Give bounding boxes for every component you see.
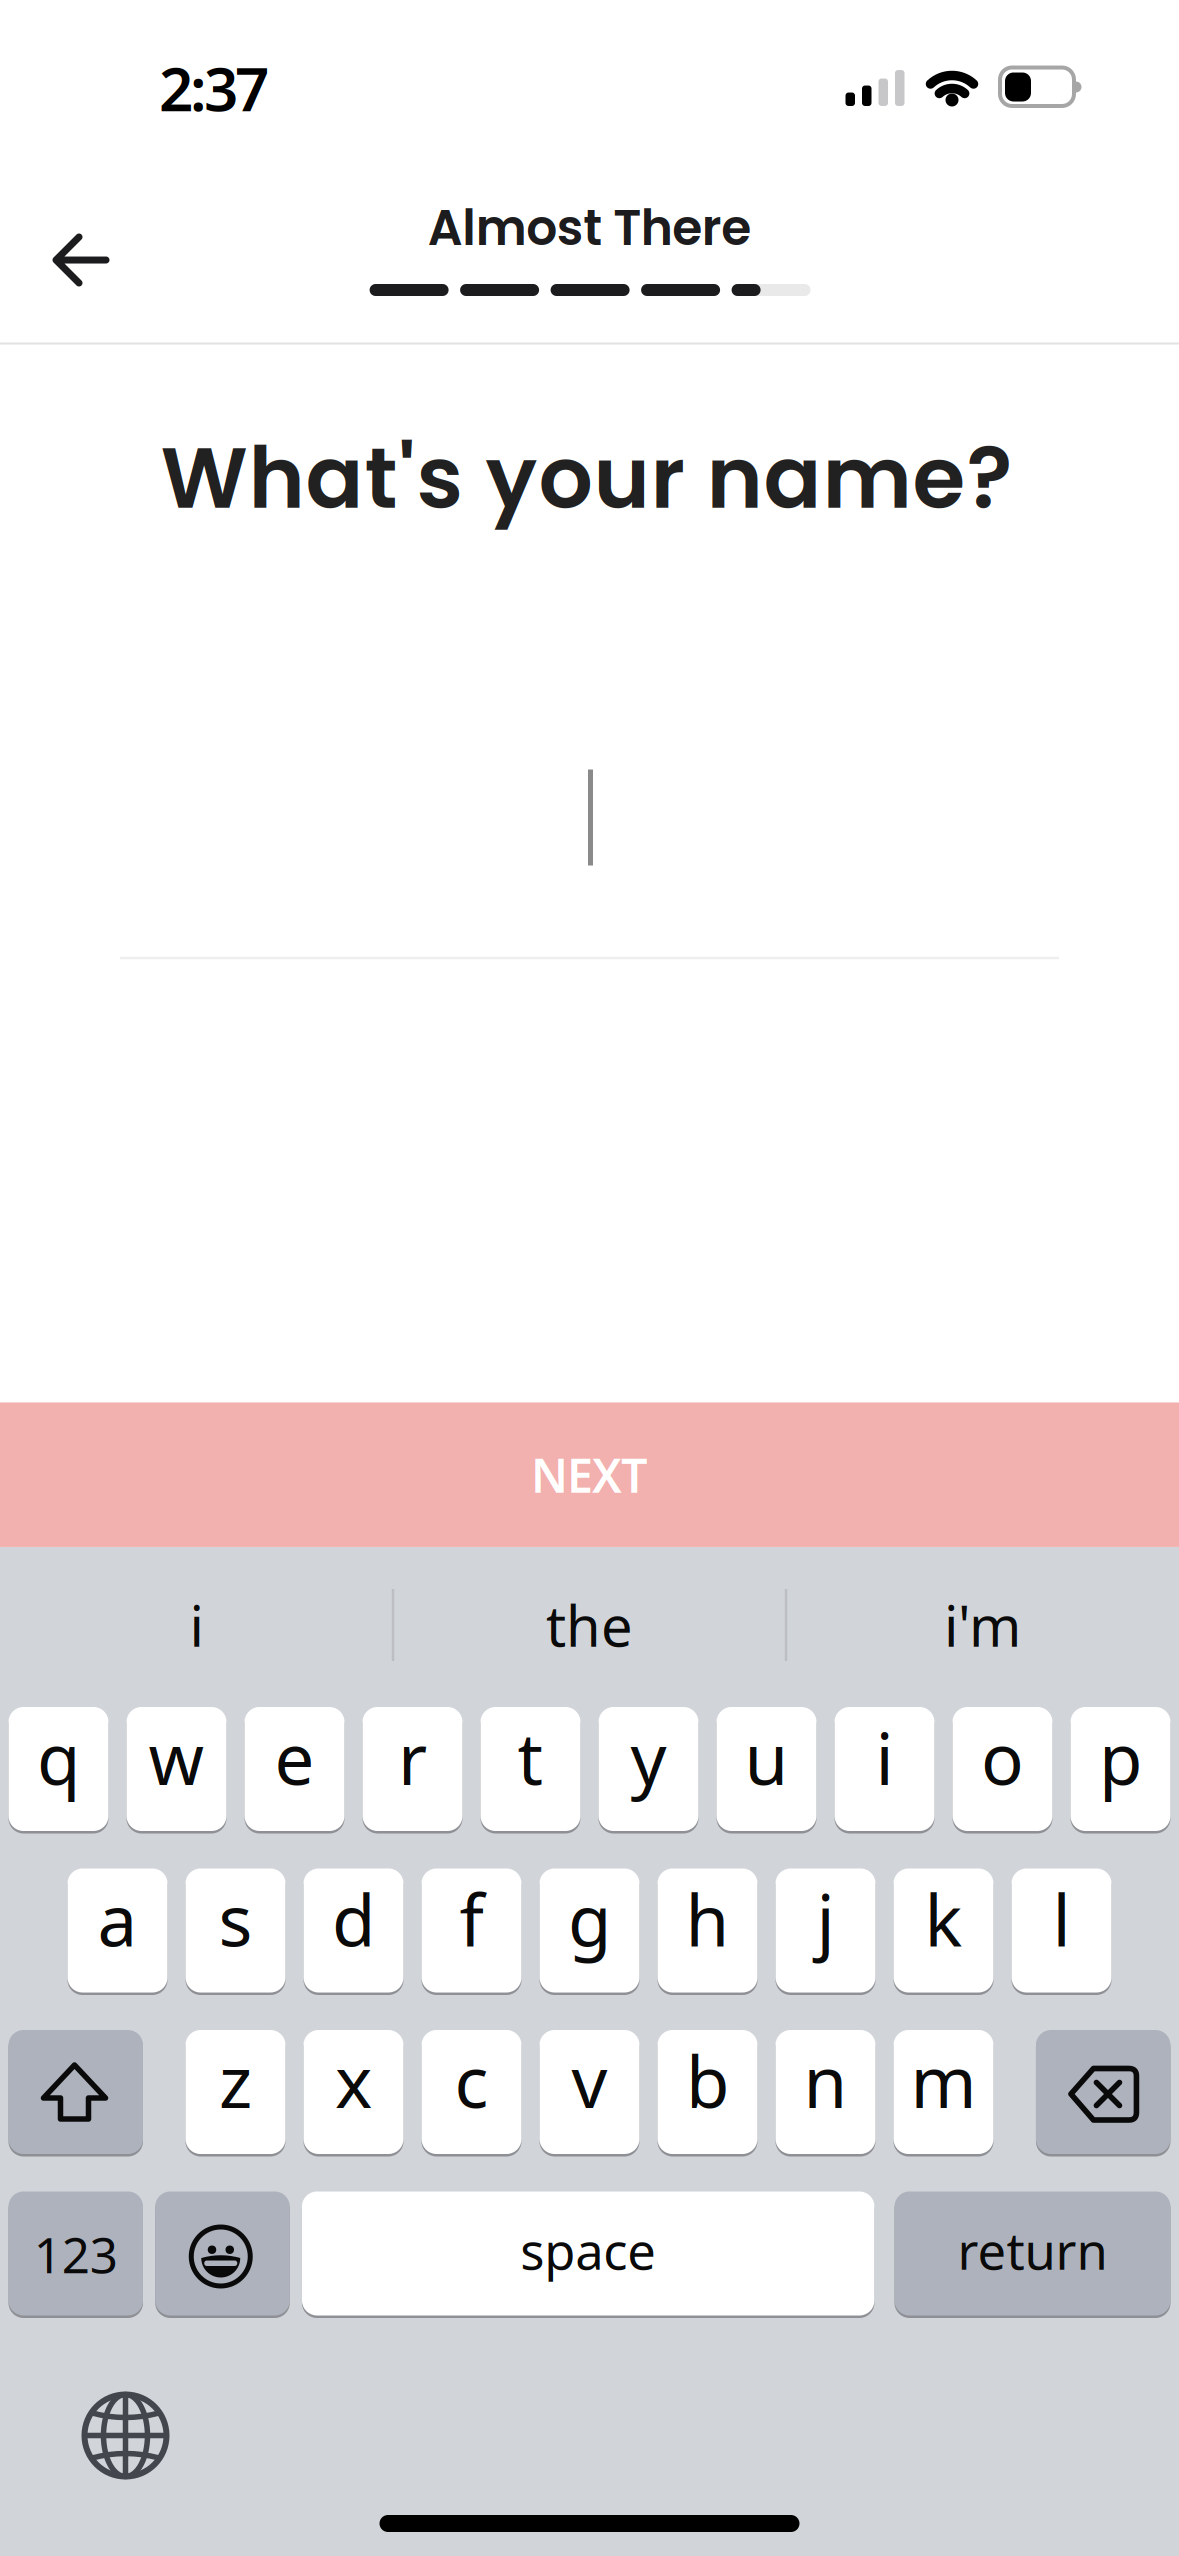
staticText: g [568,1872,611,1966]
staticText: i'm [944,1588,1021,1662]
button[interactable]: return [894,2190,1170,2317]
staticText: n [803,2034,847,2127]
staticText: space [520,2216,656,2284]
staticText: d [332,1872,375,1966]
button[interactable]: NEXT [0,1402,1179,1547]
button[interactable]: 123 [8,2190,143,2317]
staticText: l [1052,1872,1070,1966]
staticText: b [686,2034,729,2127]
staticText: w [148,1711,204,1804]
button[interactable]: r [362,1705,462,1832]
staticText: p [1099,1711,1142,1804]
button[interactable]: v [539,2028,639,2155]
staticText: f [459,1872,483,1966]
staticText: u [744,1711,788,1804]
staticText: Almost There [428,194,751,262]
staticText: NEXT [531,1444,648,1506]
button[interactable]: c [421,2028,521,2155]
button[interactable]: p [1070,1705,1170,1832]
button[interactable]: Switch keyboard [70,2380,180,2490]
button[interactable]: Emoji [155,2190,290,2317]
button[interactable]: the [399,1550,779,1700]
staticText: k [924,1872,962,1966]
staticText: i [875,1711,893,1804]
button[interactable]: k [893,1867,993,1994]
staticText: c [454,2034,488,2127]
button[interactable]: u [716,1705,816,1832]
staticText: return [957,2216,1107,2284]
button[interactable]: n [775,2028,875,2155]
staticText: h [685,1872,729,1966]
button[interactable]: w [126,1705,226,1832]
staticText: 123 [34,2221,118,2287]
button[interactable]: e [244,1705,344,1832]
button[interactable]: z [185,2028,285,2155]
button[interactable]: t [480,1705,580,1832]
button[interactable]: x [303,2028,403,2155]
button[interactable]: q [8,1705,108,1832]
button[interactable]: g [539,1867,639,1994]
button[interactable]: Back [26,205,136,315]
staticText: the [546,1588,633,1662]
button[interactable]: j [775,1867,875,1994]
staticText: i [189,1588,203,1662]
button[interactable]: b [657,2028,757,2155]
button[interactable]: s [185,1867,285,1994]
button[interactable]: i [6,1550,386,1700]
staticText: 2:37 [159,48,269,128]
button[interactable]: y [598,1705,698,1832]
button[interactable]: Shift [8,2028,143,2155]
staticText: j [816,1872,834,1966]
button[interactable]: m [893,2028,993,2155]
staticText: e [274,1711,314,1804]
staticText: y [630,1711,666,1804]
staticText: a [97,1872,137,1966]
staticText: x [335,2034,372,2127]
staticText: r [398,1711,427,1804]
button[interactable]: i'm [792,1550,1172,1700]
staticText: m [910,2034,976,2127]
button[interactable]: space [302,2190,874,2317]
button[interactable]: f [421,1867,521,1994]
staticText: o [981,1711,1024,1804]
button[interactable]: h [657,1867,757,1994]
staticText: v [571,2034,607,2127]
button[interactable]: l [1011,1867,1111,1994]
staticText: s [218,1872,252,1966]
staticText: What's your name? [160,418,1012,538]
button[interactable]: a [67,1867,167,1994]
button[interactable]: i [834,1705,934,1832]
staticText: z [219,2034,252,2127]
staticText: t [517,1711,543,1804]
button[interactable]: d [303,1867,403,1994]
button[interactable]: o [952,1705,1052,1832]
staticText: q [37,1711,80,1804]
button[interactable]: Delete [1036,2028,1170,2155]
